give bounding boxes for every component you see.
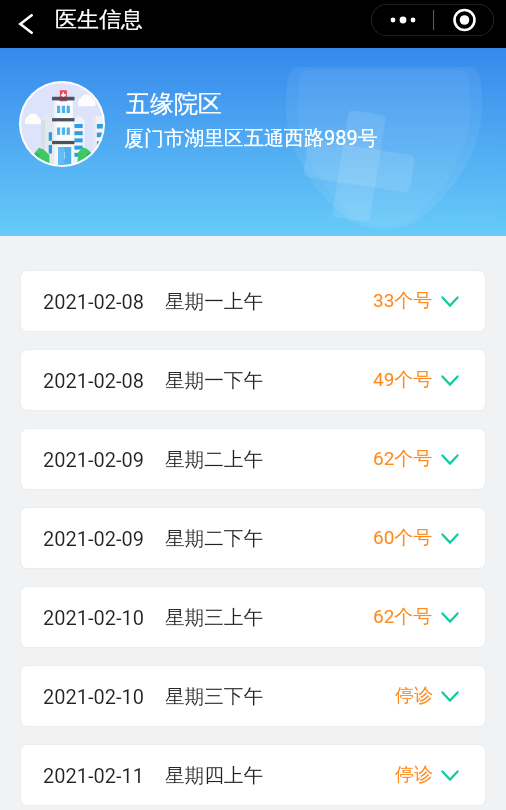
button[interactable]: 2021-02-11 (21, 745, 485, 805)
staticText: 星期二上午 (165, 447, 263, 472)
staticText: 星期三下午 (165, 684, 263, 709)
staticText: 停诊 (395, 763, 433, 787)
staticText: 2021-02-11 (43, 764, 144, 787)
staticText: 星期四上午 (165, 763, 263, 788)
staticText: 2021-02-09 (43, 448, 144, 471)
staticText: 五缘院区 (126, 89, 222, 119)
staticText: 2021-02-08 (43, 290, 144, 313)
staticText: 2021-02-10 (43, 606, 144, 629)
staticText: 2021-02-09 (43, 527, 144, 550)
button[interactable]: 2021-02-08 (21, 350, 485, 410)
staticText: 49个号 (373, 368, 433, 392)
button[interactable]: 2021-02-10 (21, 587, 485, 647)
staticText: 33个号 (373, 289, 433, 313)
button[interactable]: 2021-02-10 (21, 666, 485, 726)
staticText: 星期二下午 (165, 526, 263, 551)
staticText: 星期一上午 (165, 289, 263, 314)
staticText: 60个号 (373, 526, 433, 550)
staticText: 停诊 (395, 684, 433, 708)
staticText: 62个号 (373, 605, 433, 629)
button[interactable]: Back (9, 8, 42, 39)
staticText: 医生信息 (55, 6, 143, 34)
staticText: 厦门市湖里区五通西路989号 (124, 126, 378, 151)
staticText: 星期三上午 (165, 605, 263, 630)
staticText: 星期一下午 (165, 368, 263, 393)
button[interactable]: 2021-02-09 (21, 508, 485, 568)
staticText: 62个号 (373, 447, 433, 471)
staticText: 2021-02-08 (43, 369, 144, 392)
button[interactable]: 2021-02-08 (21, 271, 485, 331)
staticText: 2021-02-10 (43, 685, 144, 708)
button[interactable]: More options and close (371, 4, 494, 36)
button[interactable]: 2021-02-09 (21, 429, 485, 489)
